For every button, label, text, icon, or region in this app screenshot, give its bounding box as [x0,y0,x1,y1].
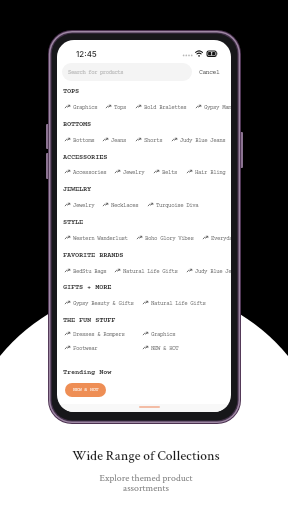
button[interactable]: Western Wanderlust [65,234,128,242]
button[interactable]: Jewelry [65,201,94,209]
button[interactable]: Jewelry [115,168,144,176]
button[interactable]: Shorts [136,136,162,144]
button[interactable]: Gypsy Mama [196,103,231,111]
button[interactable]: NEW & HOT [143,344,178,352]
staticText: Western Wanderlust [73,235,128,242]
button[interactable]: Cancel [199,63,224,81]
staticText: Everyday [211,235,231,242]
staticText: Belts [162,169,178,176]
staticText: Graphics [73,104,98,111]
staticText: Gypsy Mama [204,104,231,111]
button[interactable]: Hair Bling [187,168,225,176]
staticText: Graphics [151,331,176,338]
staticText: Boho Glory Vibes [145,235,194,242]
staticText: Jewelry [73,202,95,209]
staticText: Jewelry [123,169,145,176]
staticText: Shorts [144,137,163,144]
staticText: Judy Blue Jeans [180,137,226,144]
staticText: Dresses & Rompers [73,331,125,338]
staticText: Judy Blue Jeans [195,268,231,275]
button[interactable]: Natural Life Gifts [115,267,178,275]
staticText: Explore themed product [2,472,288,512]
button[interactable]: Judy Blue Jeans [187,267,231,275]
button[interactable]: Gypsy Beauty & Gifts [65,299,134,307]
button[interactable]: Everyday [203,234,231,242]
button[interactable]: Tops [106,103,126,111]
staticText: THE FUN STUFF [63,317,116,325]
staticText: Tops [114,104,127,111]
button[interactable]: Boho Glory Vibes [137,234,193,242]
staticText: NEW & HOT [73,387,99,393]
staticText: Footwear [73,345,98,352]
button[interactable]: Natural Life Gifts [143,299,206,307]
button[interactable]: Turquoise Diva [148,201,198,209]
staticText: JEWELRY [63,186,92,194]
staticText: Natural Life Gifts [151,300,206,307]
staticText: Gypsy Beauty & Gifts [73,300,134,307]
staticText: Necklaces [111,202,139,209]
other: Status icons [182,50,220,58]
staticText: Accessories [73,169,107,176]
staticText: Search for products [68,70,124,76]
staticText: Bottoms [73,137,95,144]
button[interactable]: Belts [154,168,177,176]
button[interactable]: Footwear [65,344,97,352]
button[interactable]: Bold Bralettes [136,103,186,111]
button[interactable]: Search for products [62,63,192,81]
staticText: Trending Now [63,369,112,377]
staticText: BedStu Bags [73,268,107,275]
staticText: FAVORITE BRANDS [63,252,124,260]
staticText: Natural Life Gifts [123,268,178,275]
staticText: STYLE [63,219,84,227]
button[interactable]: Judy Blue Jeans [172,136,225,144]
button[interactable]: Graphics [65,103,97,111]
staticText: NEW & HOT [151,345,179,352]
staticText: Jeans [111,137,127,144]
staticText: Hair Bling [195,169,226,176]
staticText: BOTTOMS [63,121,92,129]
staticText: ACCESSORIES [63,154,108,162]
button[interactable]: Graphics [143,330,175,338]
staticText: Cancel [199,69,220,76]
staticText: TOPS [63,88,80,96]
staticText: Turquoise Diva [156,202,199,209]
button[interactable]: BedStu Bags [65,267,106,275]
staticText: Bold Bralettes [144,104,187,111]
staticText: assortments [2,482,288,512]
staticText: 12:45 [76,49,97,58]
button[interactable]: Jeans [103,136,126,144]
button[interactable]: Accessories [65,168,106,176]
staticText: Wide Range of Collections [2,447,288,512]
button[interactable]: Bottoms [65,136,94,144]
staticText: GIFTS + MORE [63,284,112,292]
button[interactable]: Necklaces [103,201,138,209]
button[interactable]: NEW & HOT [65,383,106,397]
button[interactable]: Dresses & Rompers [65,330,125,338]
